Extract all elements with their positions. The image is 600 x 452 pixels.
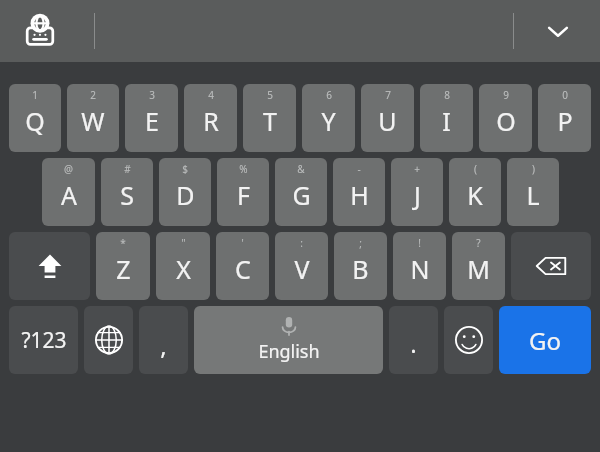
button[interactable]: ; xyxy=(334,232,387,300)
button[interactable]: * xyxy=(96,232,150,300)
button[interactable]: Emoji xyxy=(444,306,493,374)
staticText: ! xyxy=(418,236,421,250)
staticText: E xyxy=(145,104,159,138)
staticText: W xyxy=(81,104,105,138)
staticText: 5 xyxy=(267,88,273,102)
staticText: 0 xyxy=(562,88,568,102)
staticText: - xyxy=(357,162,361,176)
button[interactable]: 5 xyxy=(243,84,296,152)
staticText: + xyxy=(414,162,420,176)
button[interactable]: @ xyxy=(42,158,95,226)
button[interactable]: Go xyxy=(499,306,591,374)
staticText: R xyxy=(203,104,219,138)
staticText: V xyxy=(294,252,310,286)
button[interactable]: : xyxy=(275,232,328,300)
button[interactable]: ( xyxy=(449,158,501,226)
staticText: & xyxy=(297,162,305,176)
button[interactable]: ' xyxy=(216,232,269,300)
staticText: S xyxy=(120,178,134,212)
staticText: Q xyxy=(25,104,45,138)
button[interactable]: 1 xyxy=(9,84,61,152)
staticText: A xyxy=(61,178,77,212)
staticText: % xyxy=(239,162,248,176)
staticText: 8 xyxy=(444,88,450,102)
staticText: T xyxy=(263,104,277,138)
staticText: K xyxy=(467,178,483,212)
staticText: ?123 xyxy=(21,326,67,355)
staticText: 9 xyxy=(503,88,509,102)
button[interactable]: - xyxy=(333,158,385,226)
button[interactable]: Shift xyxy=(9,232,90,300)
button[interactable]: 7 xyxy=(361,84,414,152)
staticText: H xyxy=(350,178,369,212)
button[interactable]: Hide keyboard xyxy=(536,9,580,53)
staticText: I xyxy=(442,104,451,138)
button[interactable]: % xyxy=(217,158,269,226)
button[interactable]: . xyxy=(389,306,438,374)
button[interactable]: 8 xyxy=(420,84,473,152)
staticText: P xyxy=(557,104,573,138)
staticText: L xyxy=(526,178,540,212)
button[interactable]: Backspace xyxy=(511,232,591,300)
staticText: Z xyxy=(116,252,131,286)
staticText: O xyxy=(496,104,516,138)
button[interactable]: + xyxy=(391,158,443,226)
staticText: * xyxy=(120,236,126,250)
staticText: English xyxy=(258,339,320,364)
staticText: U xyxy=(378,104,397,138)
button[interactable]: 2 xyxy=(67,84,119,152)
button[interactable]: 0 xyxy=(538,84,591,152)
button[interactable]: Change keyboard language xyxy=(18,9,62,53)
staticText: N xyxy=(410,252,430,286)
staticText: . xyxy=(410,327,417,360)
staticText: ; xyxy=(359,236,362,250)
button[interactable]: ! xyxy=(393,232,446,300)
staticText: 1 xyxy=(32,88,38,102)
staticText: X xyxy=(176,252,191,286)
button[interactable]: ) xyxy=(507,158,559,226)
staticText: M xyxy=(467,252,490,286)
staticText: 2 xyxy=(90,88,96,102)
staticText: D xyxy=(176,178,195,212)
button[interactable]: ?123 xyxy=(9,306,78,374)
staticText: 3 xyxy=(149,88,155,102)
staticText: " xyxy=(181,236,186,250)
button[interactable]: 6 xyxy=(302,84,355,152)
staticText: , xyxy=(160,329,167,362)
button[interactable]: # xyxy=(101,158,153,226)
staticText: F xyxy=(237,178,250,212)
staticText: 6 xyxy=(326,88,332,102)
staticText: G xyxy=(292,178,311,212)
button[interactable]: English xyxy=(194,306,383,374)
staticText: : xyxy=(300,236,303,250)
staticText: Y xyxy=(321,104,336,138)
staticText: ? xyxy=(476,236,481,250)
button[interactable]: 9 xyxy=(479,84,532,152)
staticText: C xyxy=(235,252,251,286)
button[interactable]: " xyxy=(156,232,210,300)
staticText: ' xyxy=(241,236,244,250)
staticText: B xyxy=(352,252,369,286)
button[interactable]: ? xyxy=(452,232,505,300)
button[interactable]: 4 xyxy=(184,84,237,152)
staticText: 7 xyxy=(385,88,391,102)
button[interactable]: , xyxy=(139,306,188,374)
staticText: $ xyxy=(182,162,188,176)
staticText: J xyxy=(414,178,421,212)
staticText: # xyxy=(124,162,131,176)
button[interactable]: & xyxy=(275,158,327,226)
button[interactable]: $ xyxy=(159,158,211,226)
button[interactable]: 3 xyxy=(125,84,178,152)
button[interactable]: Change language xyxy=(84,306,133,374)
staticText: 4 xyxy=(208,88,214,102)
staticText: @ xyxy=(64,162,73,176)
staticText: ) xyxy=(532,162,535,176)
staticText: ( xyxy=(474,162,477,176)
staticText: Go xyxy=(529,324,561,357)
